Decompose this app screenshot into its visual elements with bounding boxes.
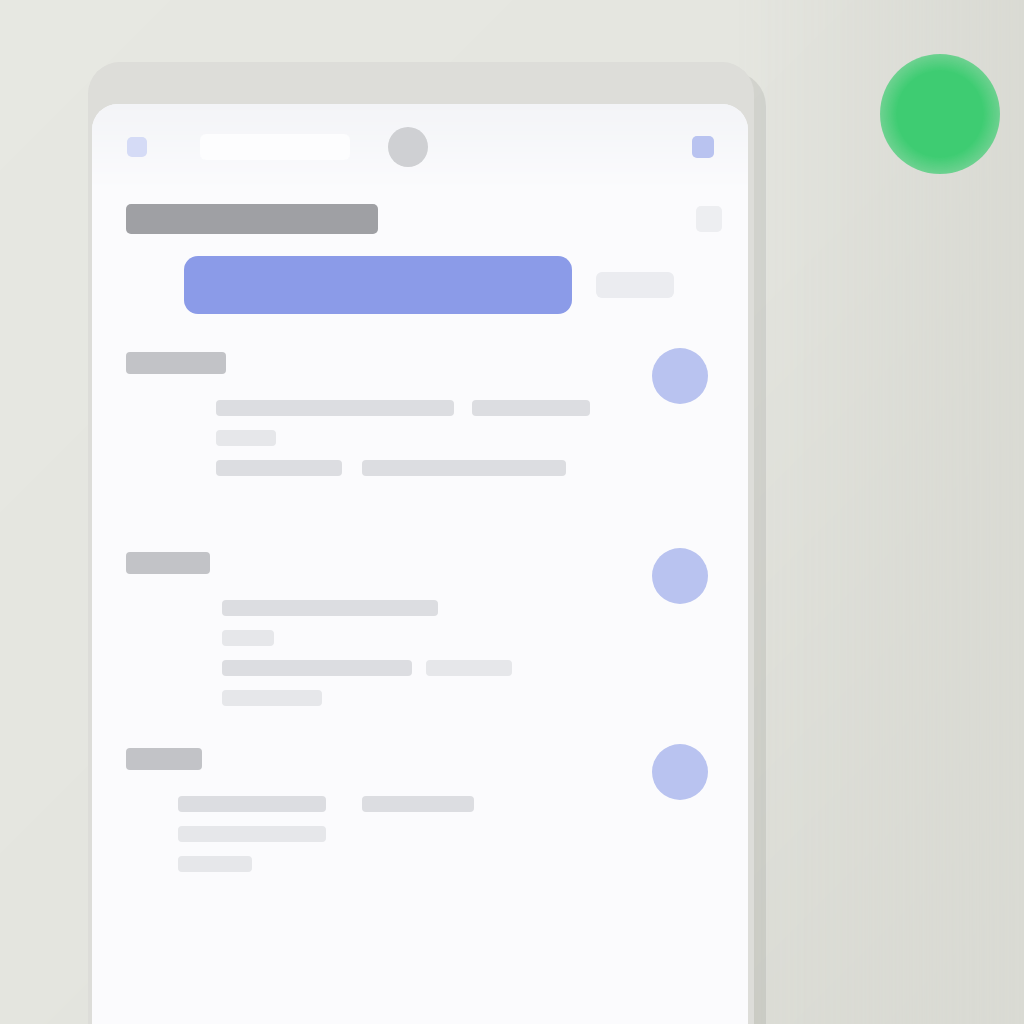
button[interactable]: Done xyxy=(684,128,722,166)
button[interactable]: Menu xyxy=(118,128,156,166)
button[interactable]: Open item xyxy=(92,344,748,544)
button[interactable]: Open item xyxy=(652,548,708,604)
button[interactable]: Open item xyxy=(92,740,748,930)
button[interactable]: Open item xyxy=(92,544,748,740)
button[interactable] xyxy=(184,256,572,314)
button[interactable]: Profile xyxy=(388,127,428,167)
button[interactable]: Status indicator xyxy=(880,54,1000,174)
button[interactable]: Open item xyxy=(652,348,708,404)
button[interactable]: Open item xyxy=(652,744,708,800)
